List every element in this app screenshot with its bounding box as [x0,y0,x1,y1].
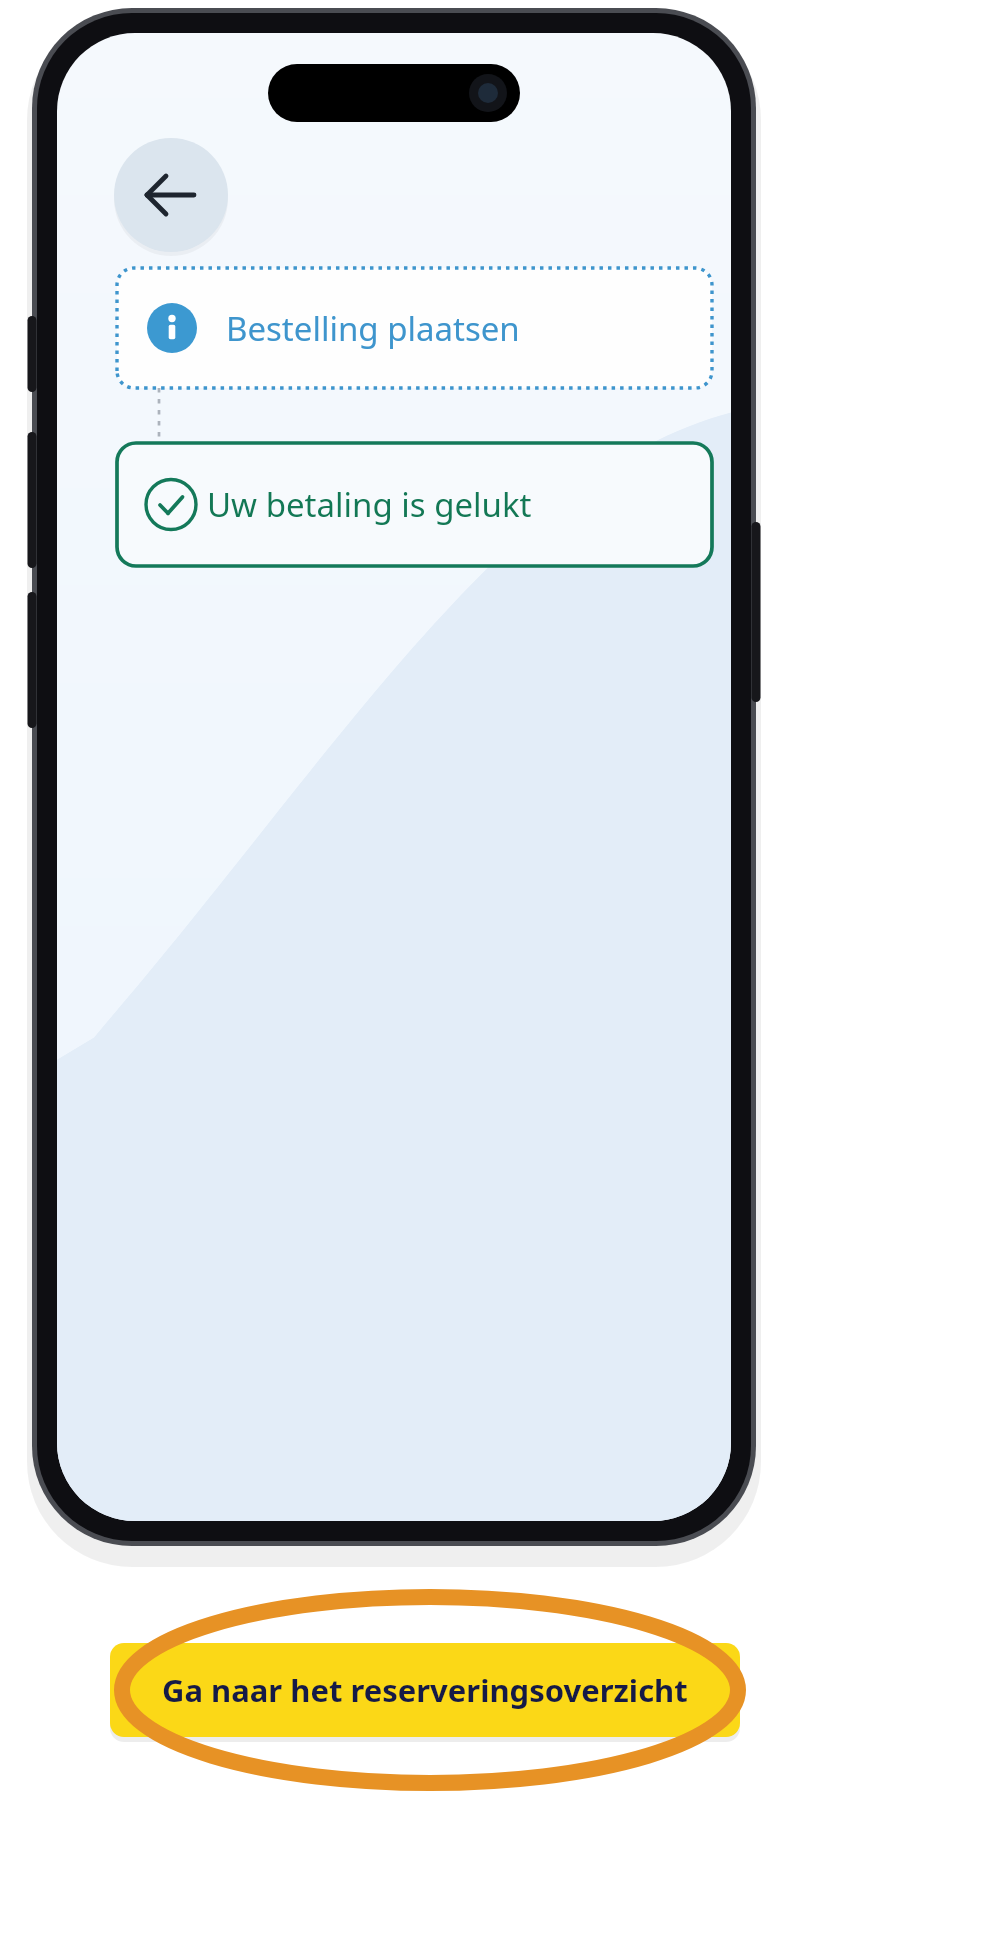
button[interactable]: Bestelling plaatsen [117,268,712,388]
staticText: Uw betaling is gelukt [207,482,532,527]
button[interactable]: Uw betaling is gelukt [117,443,712,566]
staticText: Ga naar het reserveringsoverzicht [162,1669,688,1711]
staticText: Bestelling plaatsen [226,306,520,351]
button[interactable]: Ga naar het reserveringsoverzicht [110,1643,740,1737]
button[interactable]: Terug [114,138,228,252]
